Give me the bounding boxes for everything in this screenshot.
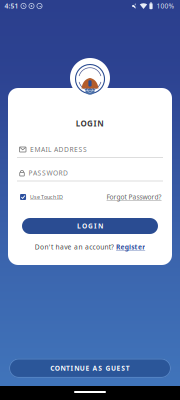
button[interactable]: Use Touch ID: [20, 193, 63, 201]
button[interactable]: LOGIN: [22, 218, 158, 234]
staticText: 100%: [156, 2, 174, 10]
staticText: CONTINUE AS GUEST: [50, 364, 130, 373]
button[interactable]: Register: [116, 243, 145, 251]
button[interactable]: CONTINUE AS GUEST: [9, 358, 171, 378]
staticText: PASSWORD: [28, 169, 68, 177]
button[interactable]: Forgot Password?: [106, 193, 161, 201]
button[interactable]: PASSWORD: [19, 166, 160, 180]
staticText: LOGIN: [77, 222, 103, 230]
staticText: Register: [116, 243, 145, 251]
staticText: Use Touch ID: [30, 193, 63, 201]
staticText: 4:51: [4, 2, 18, 10]
staticText: LOGIN: [76, 118, 104, 129]
staticText: EMAIL ADDRESS: [30, 145, 87, 154]
staticText: Don't have an account?: [35, 243, 114, 251]
button[interactable]: EMAIL ADDRESS: [19, 142, 160, 156]
staticText: Forgot Password?: [106, 193, 161, 201]
